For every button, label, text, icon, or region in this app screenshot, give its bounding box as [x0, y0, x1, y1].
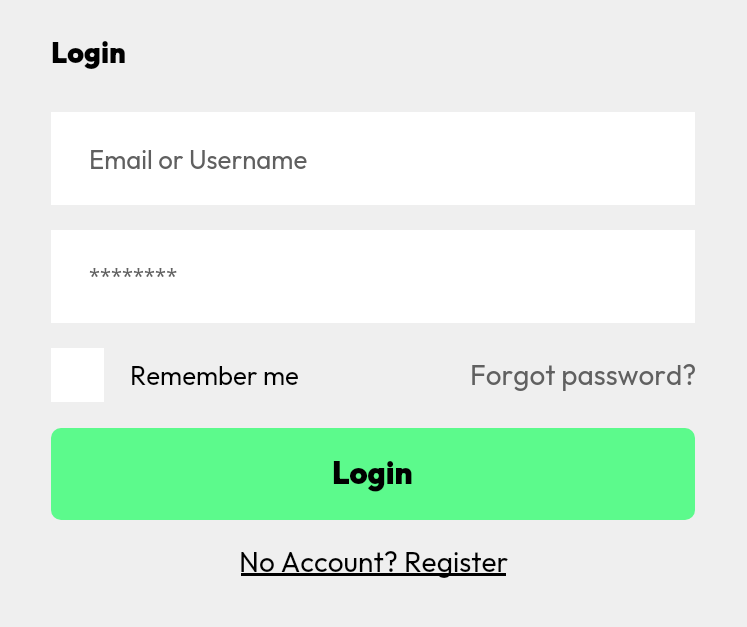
staticText: Email or Username [89, 143, 308, 176]
staticText: Login [332, 453, 413, 492]
button[interactable]: Login [51, 428, 695, 520]
staticText: Login [51, 34, 126, 70]
button[interactable]: No Account? Register [239, 544, 509, 579]
staticText: ******** [89, 262, 178, 289]
staticText: No Account? Register [239, 544, 509, 579]
staticText: Remember me [130, 359, 299, 392]
button[interactable]: ******** [51, 230, 695, 323]
button[interactable]: Email or Username [51, 112, 695, 205]
button[interactable]: Forgot password? [470, 357, 697, 392]
